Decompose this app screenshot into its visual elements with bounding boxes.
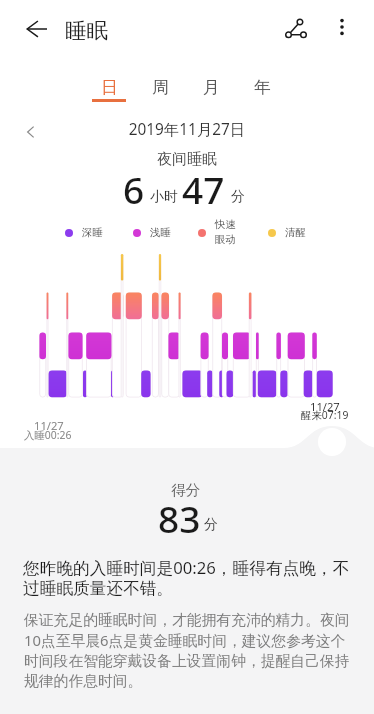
button[interactable]: Previous day [16, 117, 46, 147]
staticText: 6 [123, 164, 145, 214]
staticText: 保证充足的睡眠时间，才能拥有充沛的精力。夜间 10点至早晨6点是黄金睡眠时间，建… [24, 611, 364, 690]
staticText: 您昨晚的入睡时间是00:26，睡得有点晚，不 过睡眠质量还不错。 [23, 556, 364, 599]
staticText: 83 [158, 493, 201, 543]
button[interactable]: 日 [84, 68, 134, 104]
staticText: 睡眠 [65, 17, 108, 44]
button[interactable]: More options [320, 5, 364, 49]
staticText: 浅睡 [150, 226, 171, 239]
staticText: 日 [101, 77, 118, 98]
staticText: 分 [204, 516, 218, 534]
staticText: 深睡 [82, 226, 103, 239]
staticText: 11/27 [310, 399, 340, 414]
staticText: 得分 [171, 481, 201, 499]
staticText: 分 [231, 188, 245, 206]
button[interactable]: Back [12, 5, 60, 53]
staticText: 小时 [150, 188, 178, 206]
staticText: 2019年11月27日 [0, 119, 374, 140]
staticText: 清醒 [285, 226, 306, 239]
button[interactable]: Share [272, 5, 320, 53]
staticText: 快速 眼动 [215, 218, 236, 246]
button[interactable]: 月 [186, 68, 236, 104]
staticText: 月 [203, 77, 220, 98]
button[interactable]: 周 [135, 68, 185, 104]
button[interactable]: 年 [237, 68, 287, 104]
staticText: 夜间睡眠 [0, 150, 374, 169]
staticText: 醒来07:19 [301, 408, 349, 422]
staticText: 11/27 [34, 418, 64, 433]
staticText: 周 [152, 77, 169, 98]
staticText: 年 [254, 77, 271, 98]
staticText: 入睡00:26 [24, 428, 72, 442]
staticText: 47 [182, 164, 225, 214]
